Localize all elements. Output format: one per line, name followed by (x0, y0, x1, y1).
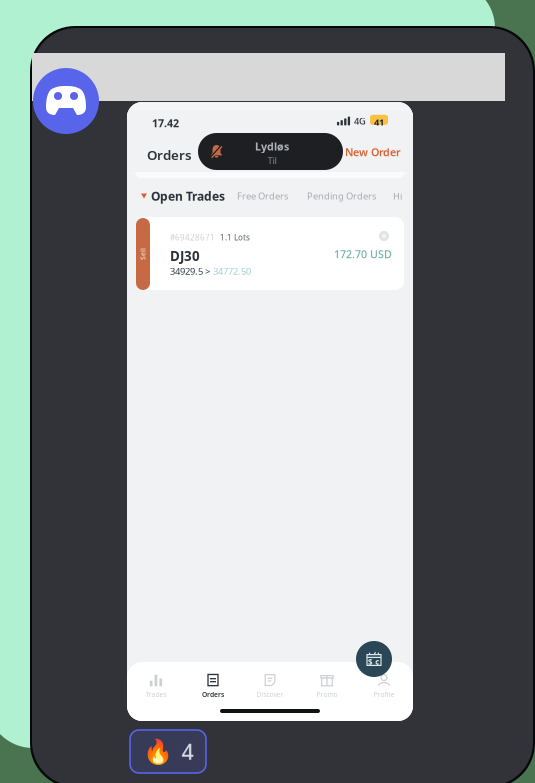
staticText: Promo (316, 690, 337, 699)
staticText: Sell (137, 250, 149, 258)
button[interactable]: Open Trades (141, 187, 231, 205)
button[interactable]: 🔥 (130, 730, 206, 773)
staticText: 1.1 Lots (220, 232, 250, 243)
staticText: New Order (345, 145, 401, 159)
staticText: Til (267, 154, 276, 167)
button[interactable]: Orders (184, 670, 241, 702)
staticText: 41 (374, 116, 384, 128)
button[interactable]: New transaction (356, 641, 392, 677)
staticText: Free Orders (237, 190, 288, 202)
staticText: DJ30 (170, 247, 200, 265)
staticText: 17.42 (152, 116, 179, 130)
staticText: #69428671 (170, 232, 215, 243)
staticText: Lydløs (255, 139, 289, 153)
staticText: Discover (256, 690, 283, 699)
staticText: Profile (373, 690, 394, 699)
staticText: 🔥 (142, 738, 172, 765)
staticText: $ (368, 657, 373, 668)
button[interactable]: Promo (298, 670, 355, 702)
staticText: Trades (145, 690, 166, 699)
staticText: 172.70 USD (334, 247, 392, 261)
staticText: ¢ (375, 657, 380, 668)
button[interactable]: Discover (241, 670, 298, 702)
staticText: 34929.5 > (170, 265, 210, 277)
staticText: 34772.50 (213, 265, 251, 277)
staticText: Orders (147, 146, 192, 164)
staticText: Hi (393, 190, 402, 202)
staticText: Pending Orders (307, 190, 376, 202)
button[interactable]: Pending Orders (307, 187, 377, 205)
button[interactable]: Sell (136, 217, 404, 290)
button[interactable]: Trades (127, 670, 184, 702)
staticText: Orders (202, 690, 224, 699)
button[interactable]: Free Orders (237, 187, 291, 205)
staticText: Open Trades (151, 188, 225, 204)
button[interactable]: Hi (393, 187, 407, 205)
button[interactable]: New Order (345, 144, 403, 160)
staticText: 4 (181, 737, 193, 766)
button[interactable]: Profile (355, 670, 412, 702)
staticText: 4G (354, 115, 366, 127)
